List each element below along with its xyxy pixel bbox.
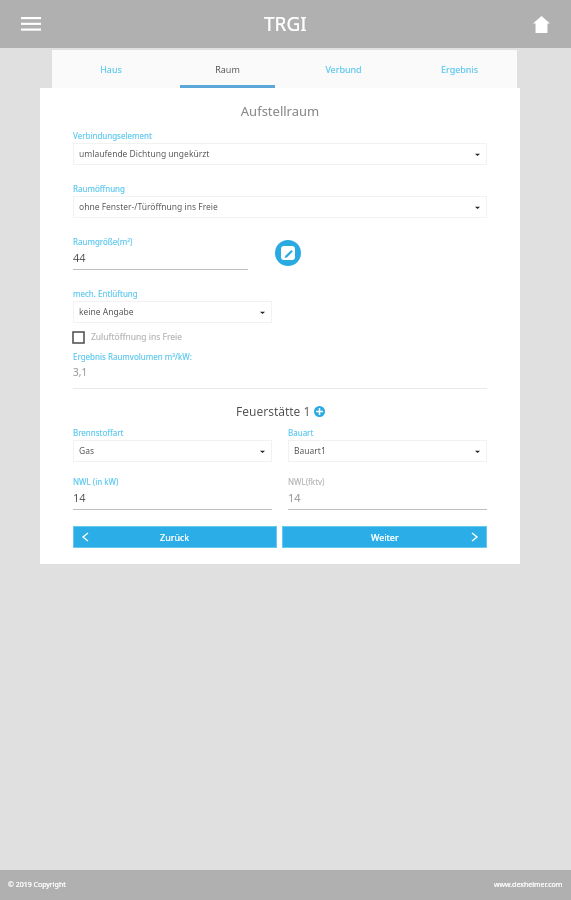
staticText: www.dexheimer.com xyxy=(494,880,563,890)
staticText: Verbindungselement xyxy=(73,130,152,141)
staticText: Raumöffnung xyxy=(73,183,125,194)
button[interactable]: Weiter xyxy=(282,526,487,548)
staticText: keine Angabe xyxy=(79,306,134,318)
staticText: Raum xyxy=(215,63,240,75)
button[interactable]: Menu xyxy=(14,7,48,41)
staticText: Gas xyxy=(79,445,95,457)
staticText: 3,1 xyxy=(73,365,88,379)
staticText: Bauart xyxy=(288,427,314,438)
staticText: NWL(fktv) xyxy=(288,476,325,487)
staticText: NWL (in kW) xyxy=(73,476,119,487)
button[interactable]: Verbindungselement xyxy=(73,130,487,165)
button[interactable]: Haus xyxy=(52,50,169,88)
button[interactable]: Home xyxy=(525,8,557,40)
staticText: umlaufende Dichtung ungekürzt xyxy=(79,148,210,160)
staticText: © 2019 Copyright xyxy=(8,880,66,890)
button[interactable]: Ergebnis xyxy=(401,50,517,88)
staticText: Ergebnis Raumvolumen m³/kW: xyxy=(73,351,192,362)
button[interactable]: NWL(fktv) xyxy=(288,476,487,510)
button[interactable]: mech. Entlüftung xyxy=(73,288,272,323)
button[interactable]: Brennstoffart xyxy=(73,427,272,462)
staticText: Raumgröße(m²) xyxy=(73,236,133,247)
staticText: Haus xyxy=(100,63,122,75)
staticText: Zuluftöffnung ins Freie xyxy=(91,331,183,343)
staticText: Bauart1 xyxy=(294,445,326,457)
button[interactable]: Edit room size xyxy=(275,240,301,266)
staticText: 14 xyxy=(288,490,301,505)
button[interactable]: Add Feuerstätte xyxy=(314,406,325,417)
staticText: ohne Fenster-/Türöffnung ins Freie xyxy=(79,201,218,213)
staticText: Ergebnis xyxy=(441,63,478,75)
staticText: Zurück xyxy=(160,531,190,543)
button[interactable]: NWL (in kW) xyxy=(73,476,272,510)
staticText: Verbund xyxy=(325,63,362,75)
button[interactable]: Raum xyxy=(169,50,285,88)
staticText: Aufstellraum xyxy=(40,102,520,120)
staticText: Weiter xyxy=(371,531,399,543)
staticText: 44 xyxy=(73,250,86,265)
staticText: Brennstoffart xyxy=(73,427,124,438)
button[interactable]: Bauart xyxy=(288,427,487,462)
staticText: TRGI xyxy=(264,11,307,37)
staticText: 14 xyxy=(73,490,86,505)
button[interactable]: Zuluftöffnung ins Freie xyxy=(73,331,183,343)
button[interactable]: Raumöffnung xyxy=(73,183,487,218)
staticText: Feuerstätte 1 xyxy=(236,403,311,419)
button[interactable]: Zurück xyxy=(73,526,277,548)
staticText: mech. Entlüftung xyxy=(73,288,138,299)
button[interactable]: Verbund xyxy=(285,50,401,88)
